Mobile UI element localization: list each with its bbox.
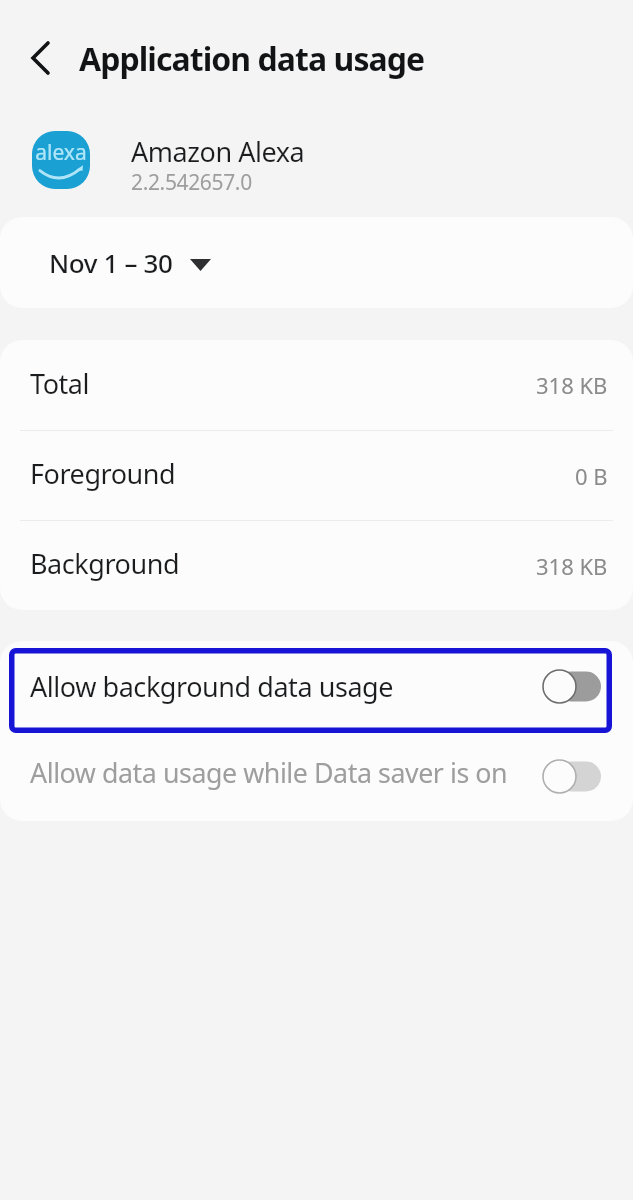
staticText: Allow background data usage bbox=[30, 668, 394, 705]
staticText: 318 KB bbox=[536, 551, 608, 581]
staticText: 2.2.542657.0 bbox=[131, 168, 252, 197]
button[interactable]: Toggle, off bbox=[542, 759, 601, 794]
button[interactable]: Foreground bbox=[0, 431, 633, 520]
staticText: 0 B bbox=[575, 461, 608, 491]
staticText: 318 KB bbox=[536, 370, 608, 400]
button[interactable]: Back bbox=[12, 32, 64, 84]
staticText: alexa bbox=[35, 138, 87, 167]
staticText: Amazon Alexa bbox=[131, 133, 305, 170]
button[interactable]: alexa bbox=[0, 127, 633, 213]
staticText: Nov 1 – 30 bbox=[49, 245, 173, 280]
staticText: Total bbox=[30, 365, 90, 402]
button[interactable]: Toggle, off bbox=[542, 669, 601, 704]
staticText: Foreground bbox=[30, 455, 176, 492]
button[interactable]: Background bbox=[0, 521, 633, 610]
staticText: Background bbox=[30, 545, 180, 582]
staticText: Application data usage bbox=[79, 37, 425, 81]
button[interactable]: Total bbox=[0, 340, 633, 430]
staticText: Allow data usage while Data saver is on bbox=[30, 754, 508, 791]
button[interactable]: Allow data usage while Data saver is on bbox=[0, 731, 633, 821]
button[interactable]: Allow background data usage bbox=[0, 641, 633, 731]
button[interactable]: Nov 1 – 30 bbox=[0, 217, 633, 308]
